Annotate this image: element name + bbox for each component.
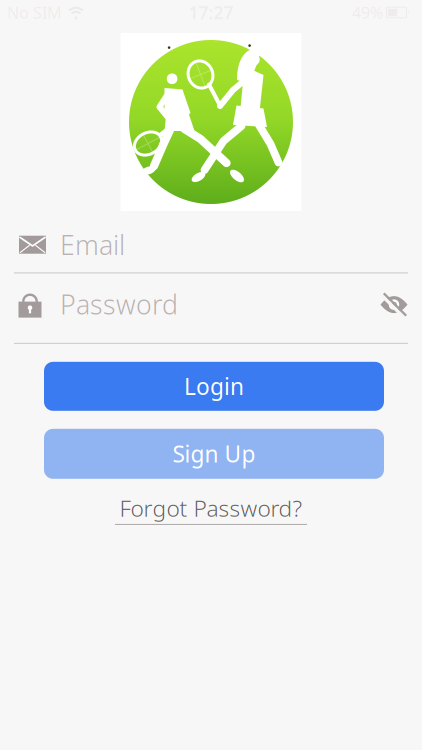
staticText: Sign Up [172, 439, 255, 469]
staticText: 17:27 [188, 1, 233, 24]
staticText: Login [184, 371, 244, 401]
button[interactable]: Login [44, 362, 384, 411]
button[interactable]: Forgot Password? [115, 493, 307, 525]
staticText: 49% [352, 2, 383, 23]
button[interactable]: Show password [378, 290, 409, 318]
staticText: Forgot Password? [119, 493, 302, 523]
button[interactable]: Sign Up [44, 429, 384, 479]
secureTextField[interactable]: Password [60, 286, 378, 322]
textField[interactable]: Email [60, 227, 402, 262]
staticText: Password [60, 286, 178, 322]
staticText: Password [60, 286, 180, 322]
staticText: Email [60, 227, 125, 262]
staticText: No SIM [7, 2, 62, 23]
staticText: Email [60, 227, 129, 262]
